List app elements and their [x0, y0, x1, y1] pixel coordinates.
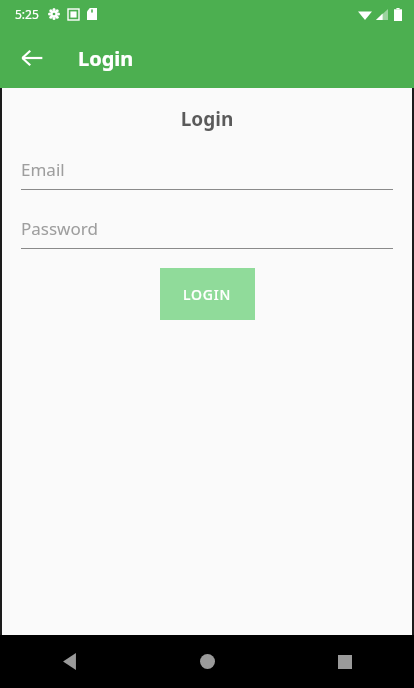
- button[interactable]: Back: [0, 635, 138, 688]
- button[interactable]: Password: [21, 217, 393, 249]
- staticText: Login: [78, 45, 134, 72]
- button[interactable]: LOGIN: [160, 268, 255, 320]
- button[interactable]: Email: [21, 158, 393, 190]
- staticText: Email: [21, 158, 65, 181]
- staticText: LOGIN: [183, 285, 232, 304]
- button[interactable]: Recent apps: [276, 635, 414, 688]
- staticText: Password: [21, 217, 98, 240]
- staticText: 5:25: [15, 6, 39, 22]
- staticText: Login: [0, 106, 414, 132]
- button[interactable]: Home: [138, 635, 276, 688]
- button[interactable]: Back: [12, 38, 52, 78]
